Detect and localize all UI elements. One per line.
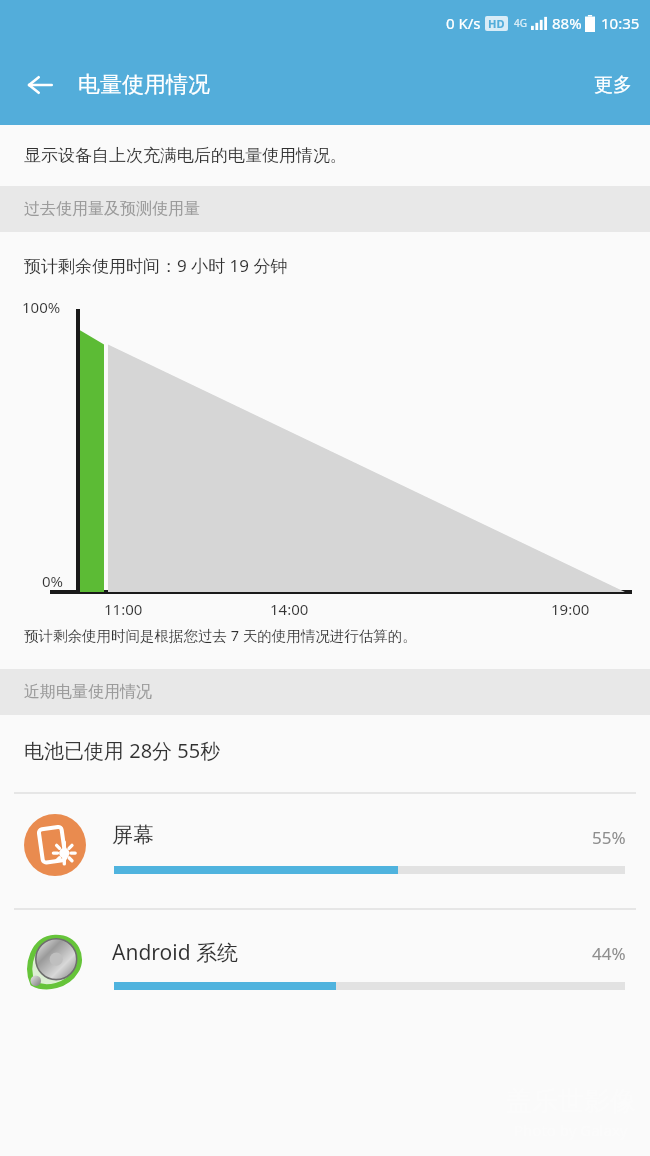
staticText: 电池已使用 28分 55秒 <box>24 737 221 764</box>
staticText: 14:00 <box>270 599 309 619</box>
staticText: 44% <box>592 942 626 965</box>
staticText: 11:00 <box>104 599 143 619</box>
staticText: 预计剩余使用时间：9 小时 19 分钟 <box>24 254 288 277</box>
staticText: Android 系统 <box>112 938 239 967</box>
staticText: 预计剩余使用时间是根据您过去 7 天的使用情况进行估算的。 <box>24 625 417 645</box>
staticText: 88% <box>552 13 582 33</box>
staticText: 4G <box>514 16 527 30</box>
staticText: 电量使用情况 <box>78 71 210 99</box>
staticText: 19:00 <box>551 599 590 619</box>
staticText: 0 K/s <box>446 13 481 33</box>
button[interactable]: 屏幕 <box>0 794 650 908</box>
staticText: HD <box>488 16 505 31</box>
button[interactable]: Android 系统 <box>0 910 650 1024</box>
staticText: 0% <box>42 571 64 591</box>
button[interactable]: 更多 <box>576 61 650 109</box>
staticText: 过去使用量及预测使用量 <box>24 199 200 219</box>
staticText: 55% <box>592 826 626 849</box>
button[interactable]: Back <box>14 59 66 111</box>
staticText: 100% <box>22 297 61 317</box>
staticText: 近期电量使用情况 <box>24 682 152 702</box>
staticText: 屏幕 <box>112 822 154 848</box>
staticText: 更多 <box>594 73 632 97</box>
staticText: 10:35 <box>601 13 640 33</box>
staticText: 显示设备自上次充满电后的电量使用情况。 <box>24 145 347 166</box>
